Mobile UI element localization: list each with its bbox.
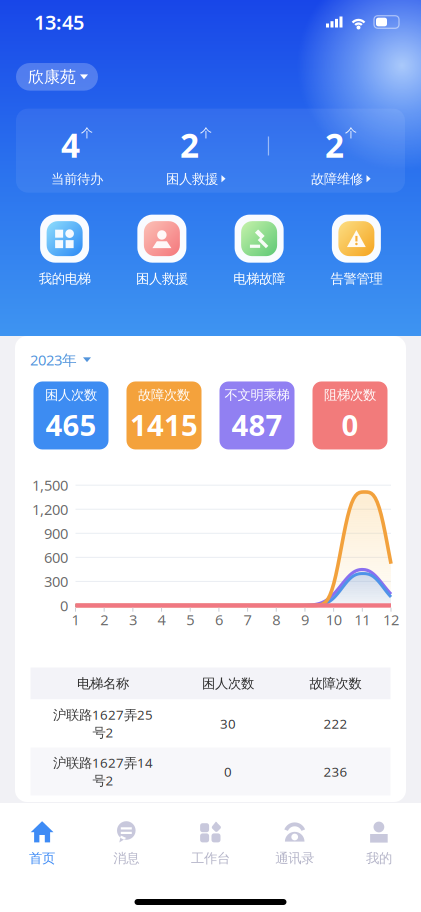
staticText: 2 xyxy=(180,123,199,167)
staticText: 9 xyxy=(301,610,309,629)
button[interactable]: 2 xyxy=(166,123,226,187)
button[interactable]: 欣康苑 xyxy=(16,63,98,91)
button[interactable]: 告警管理 xyxy=(330,215,382,287)
staticText: 故障次数 xyxy=(309,675,361,692)
button[interactable]: 工作台 xyxy=(168,820,253,866)
staticText: 465 xyxy=(45,405,96,444)
staticText: 0 xyxy=(341,405,358,444)
staticText: 欣康苑 xyxy=(28,67,76,87)
staticText: 当前待办 xyxy=(51,171,103,187)
staticText: 个 xyxy=(200,126,212,140)
staticText: 900 xyxy=(44,524,68,543)
staticText: 600 xyxy=(44,548,68,567)
button[interactable]: 首页 xyxy=(0,820,84,866)
staticText: 4 xyxy=(61,123,80,167)
staticText: 222 xyxy=(323,715,347,732)
staticText: 11 xyxy=(354,610,370,629)
button[interactable]: 我的电梯 xyxy=(39,215,91,287)
staticText: 0 xyxy=(224,763,232,780)
staticText: 7 xyxy=(244,610,252,629)
staticText: 电梯名称 xyxy=(77,675,129,692)
button[interactable]: 通讯录 xyxy=(253,820,337,866)
button[interactable]: 我的 xyxy=(337,820,421,866)
staticText: 4 xyxy=(158,610,166,629)
button[interactable]: 2023年 xyxy=(15,336,406,369)
staticText: 故障次数 xyxy=(138,387,190,403)
staticText: 号2 xyxy=(92,723,113,741)
staticText: 487 xyxy=(231,405,282,444)
staticText: 3 xyxy=(129,610,137,629)
button[interactable]: 4 xyxy=(51,123,103,187)
staticText: 2 xyxy=(100,610,108,629)
staticText: 个 xyxy=(345,126,357,140)
staticText: 1,500 xyxy=(32,475,68,495)
staticText: 工作台 xyxy=(191,850,230,866)
staticText: 困人次数 xyxy=(45,387,97,403)
staticText: 5 xyxy=(186,610,194,629)
staticText: 不文明乘梯 xyxy=(224,387,289,403)
staticText: 6 xyxy=(215,610,223,629)
staticText: 阻梯次数 xyxy=(324,387,376,403)
button[interactable]: 消息 xyxy=(84,820,168,866)
staticText: 12 xyxy=(383,610,399,629)
staticText: 沪联路1627弄25 xyxy=(53,706,153,723)
staticText: 我的电梯 xyxy=(39,271,91,287)
staticText: 30 xyxy=(220,715,236,732)
staticText: 1,200 xyxy=(32,499,68,519)
staticText: 1 xyxy=(71,610,79,629)
staticText: 困人救援 xyxy=(136,271,188,287)
staticText: 号2 xyxy=(92,771,113,789)
staticText: 10 xyxy=(326,610,342,629)
staticText: 通讯录 xyxy=(275,850,314,866)
button[interactable]: 困人救援 xyxy=(136,215,188,287)
staticText: 0 xyxy=(60,596,68,615)
staticText: 个 xyxy=(81,126,93,140)
staticText: 1415 xyxy=(130,405,198,444)
staticText: 300 xyxy=(44,572,68,591)
staticText: 消息 xyxy=(113,850,139,866)
staticText: 13:45 xyxy=(34,9,84,35)
staticText: 困人救援 xyxy=(166,171,218,187)
staticText: 8 xyxy=(272,610,280,629)
staticText: 我的 xyxy=(366,850,392,866)
staticText: 故障维修 xyxy=(311,171,363,187)
staticText: 沪联路1627弄14 xyxy=(53,754,153,771)
button[interactable]: 电梯故障 xyxy=(233,215,285,287)
staticText: 告警管理 xyxy=(330,271,382,287)
staticText: 首页 xyxy=(29,850,55,866)
staticText: 2 xyxy=(325,123,344,167)
staticText: 电梯故障 xyxy=(233,271,285,287)
staticText: 困人次数 xyxy=(202,675,254,692)
button[interactable]: 2 xyxy=(311,123,371,187)
staticText: 2023年 xyxy=(30,350,77,369)
staticText: 236 xyxy=(323,763,347,780)
